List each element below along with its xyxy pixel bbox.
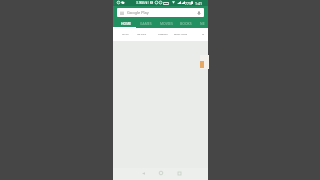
staticText: MOVIES [160, 21, 173, 26]
button[interactable]: Editors' Choice [173, 28, 189, 41]
staticText: HOME [121, 21, 132, 26]
staticText: Editors' Choice [174, 33, 188, 36]
staticText: 1:41 [195, 1, 202, 6]
button[interactable]: NE [196, 18, 208, 28]
button[interactable]: Google Play [117, 8, 204, 17]
button[interactable]: Fa [199, 28, 207, 41]
staticText: 77% [185, 1, 192, 6]
button[interactable]: Back [139, 169, 147, 177]
staticText: NE [200, 21, 205, 26]
staticText: Top charts [137, 33, 147, 36]
button[interactable]: GAMES [136, 18, 156, 28]
staticText: For you [122, 33, 129, 36]
button[interactable]: Recent apps [175, 169, 183, 177]
button[interactable]: Categories [156, 28, 169, 41]
staticText: GAMES [140, 21, 152, 26]
staticText: BOOKS [180, 21, 192, 26]
button[interactable]: Top charts [136, 28, 148, 41]
button[interactable]: For you [120, 28, 131, 41]
staticText: Categories [158, 33, 168, 36]
button[interactable]: HOME [116, 18, 136, 28]
staticText: Fa [202, 33, 205, 36]
button[interactable]: Home [157, 169, 165, 177]
button[interactable]: BOOKS [176, 18, 196, 28]
button[interactable]: MOVIES [156, 18, 176, 28]
staticText: 3.96K/s [136, 1, 148, 5]
staticText: Google Play [127, 10, 149, 15]
